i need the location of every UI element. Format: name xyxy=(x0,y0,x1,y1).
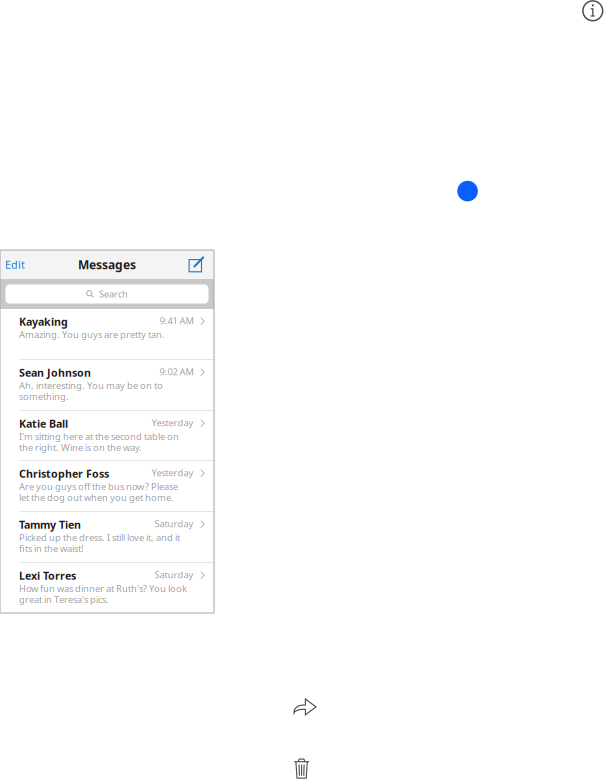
staticText: Saturday xyxy=(154,517,193,530)
staticText: let the dog out when you get home. xyxy=(19,491,174,504)
staticText: 9:41 AM xyxy=(159,314,193,327)
staticText: I'm sitting here at the second table on xyxy=(19,430,179,443)
staticText: Yesterday xyxy=(151,416,193,429)
staticText: the right. Wine is on the way. xyxy=(19,441,142,454)
staticText: Ah, interesting. You may be on to xyxy=(19,379,163,392)
button[interactable]: Edit xyxy=(0,250,31,279)
button[interactable]: Tammy Tien xyxy=(0,512,214,562)
button[interactable]: Share xyxy=(293,695,317,714)
staticText: Christopher Foss xyxy=(19,466,109,481)
staticText: Edit xyxy=(5,257,25,272)
staticText: 9:02 AM xyxy=(159,365,193,378)
button[interactable]: Christopher Foss xyxy=(0,461,214,511)
button[interactable]: Delete xyxy=(293,757,310,779)
staticText: Saturday xyxy=(154,568,193,581)
staticText: great in Teresa's pics. xyxy=(19,593,109,606)
staticText: Yesterday xyxy=(151,466,193,479)
button[interactable]: Katie Ball xyxy=(0,411,214,460)
button[interactable]: Info xyxy=(582,0,604,22)
button[interactable]: Lexi Torres xyxy=(0,563,214,612)
staticText: something. xyxy=(19,390,69,403)
button[interactable]: Sean Johnson xyxy=(0,360,214,410)
staticText: Sean Johnson xyxy=(19,365,91,380)
staticText: Are you guys off the bus now? Please xyxy=(19,480,178,493)
staticText: Messages xyxy=(78,256,136,272)
button[interactable]: Kayaking xyxy=(0,309,214,359)
staticText: Amazing. You guys are pretty tan. xyxy=(19,328,165,341)
staticText: fits in the waist! xyxy=(19,542,84,555)
staticText: Search xyxy=(99,288,128,300)
staticText: Katie Ball xyxy=(19,416,68,431)
staticText: Lexi Torres xyxy=(19,568,76,583)
staticText: Tammy Tien xyxy=(19,517,81,532)
staticText: Picked up the dress. I still love it, an… xyxy=(19,531,180,544)
staticText: How fun was dinner at Ruth's? You look xyxy=(19,582,187,595)
button[interactable]: Compose xyxy=(182,250,214,279)
staticText: Kayaking xyxy=(19,314,68,329)
